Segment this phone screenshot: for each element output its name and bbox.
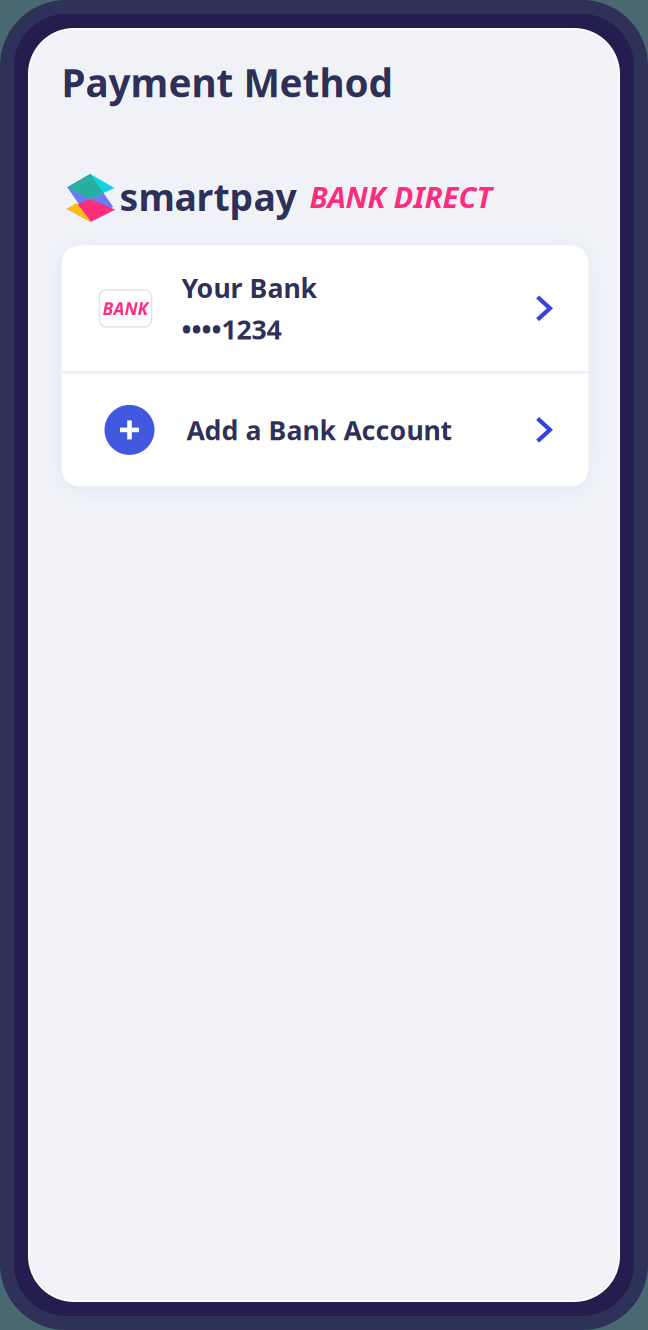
- staticText: BANK DIRECT: [309, 177, 492, 216]
- button[interactable]: Add a Bank Account: [61, 373, 588, 486]
- staticText: Payment Method: [61, 56, 392, 108]
- staticText: Your Bank: [181, 270, 317, 305]
- button[interactable]: BANK: [61, 245, 588, 371]
- staticText: BANK: [102, 297, 148, 320]
- staticText: ••••1234: [181, 311, 281, 347]
- staticText: smartpay: [119, 172, 296, 221]
- staticText: Add a Bank Account: [186, 412, 452, 448]
